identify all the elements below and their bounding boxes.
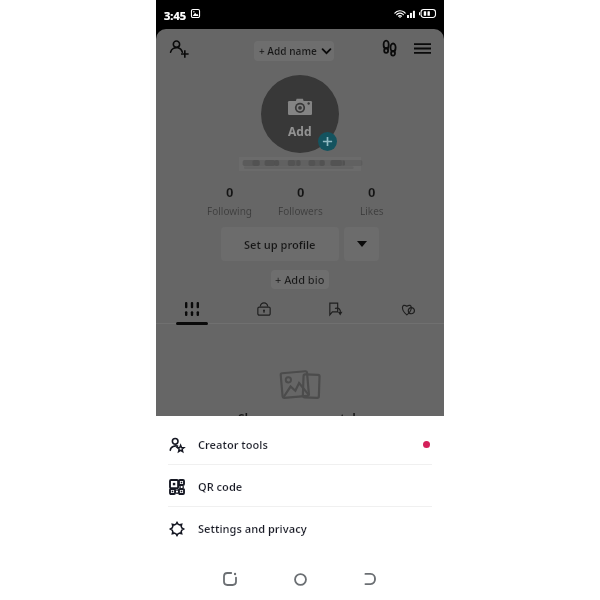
staticText: 0 [368, 183, 376, 201]
button[interactable]: Videos [156, 293, 228, 325]
button[interactable]: Add [318, 132, 337, 151]
button[interactable]: Recent apps [214, 563, 246, 595]
button[interactable]: + Add name [254, 41, 334, 61]
staticText: Share your own style [238, 410, 363, 416]
staticText: Likes [360, 204, 384, 218]
staticText: 0 [297, 183, 305, 201]
button[interactable]: Private [228, 293, 300, 325]
staticText: + Add name [259, 44, 317, 58]
button[interactable]: Back [354, 563, 386, 595]
staticText: Add [288, 123, 312, 139]
staticText: Set up profile [244, 237, 316, 252]
button[interactable]: Creator tools [156, 423, 444, 465]
button[interactable]: Settings and privacy [156, 507, 444, 549]
button[interactable]: Reposts [300, 293, 372, 325]
staticText: 0 [226, 183, 234, 201]
button[interactable]: Set up profile [221, 227, 339, 261]
button[interactable]: Home [284, 563, 316, 595]
button[interactable]: Footprints [376, 34, 404, 62]
button[interactable]: + Add bio [271, 270, 329, 289]
staticText: Followers [278, 204, 323, 218]
staticText: + Add bio [275, 272, 325, 287]
staticText: 3:45 [164, 8, 186, 23]
button[interactable]: Add profile photo [261, 75, 339, 153]
staticText: Creator tools [198, 437, 268, 452]
staticText: Settings and privacy [198, 521, 307, 536]
button[interactable]: More options [344, 227, 379, 261]
button[interactable]: Add friends [164, 34, 194, 64]
staticText: Following [207, 204, 253, 218]
staticText: QR code [198, 479, 243, 494]
button[interactable]: Liked [372, 293, 444, 325]
button[interactable]: QR code [156, 465, 444, 507]
button[interactable]: Menu [408, 34, 436, 62]
